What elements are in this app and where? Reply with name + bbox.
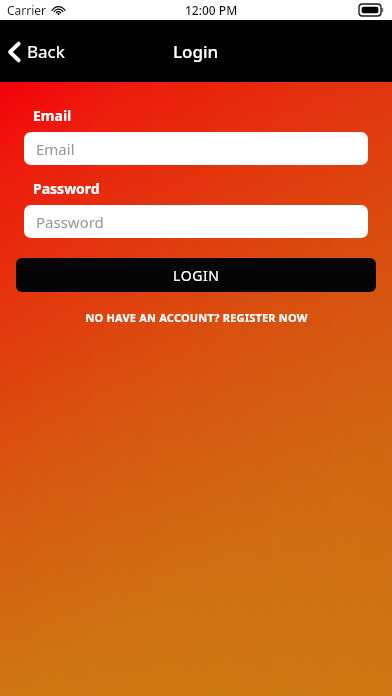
staticText: LOGIN (173, 266, 220, 285)
button[interactable]: Password (24, 205, 368, 238)
staticText: Carrier (7, 2, 47, 18)
staticText: Password (33, 179, 100, 198)
button[interactable]: Back (0, 32, 77, 71)
button[interactable]: Email (24, 132, 368, 165)
staticText: Email (36, 139, 75, 159)
staticText: NO HAVE AN ACCOUNT? REGISTER NOW (85, 310, 308, 325)
button[interactable]: LOGIN (16, 258, 376, 292)
button[interactable]: NO HAVE AN ACCOUNT? REGISTER NOW (0, 306, 392, 329)
staticText: Back (27, 40, 65, 63)
staticText: Password (36, 212, 104, 232)
staticText: 12:00 PM (185, 2, 238, 18)
other: Back (8, 42, 21, 62)
staticText: Login (173, 40, 219, 63)
staticText: Email (33, 106, 72, 125)
